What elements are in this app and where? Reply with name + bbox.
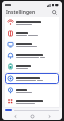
button[interactable]: Terug <box>11 112 19 120</box>
button[interactable] <box>5 39 59 50</box>
staticText: Instellingen <box>6 9 36 16</box>
button[interactable] <box>5 85 59 96</box>
button[interactable] <box>5 17 59 28</box>
button[interactable]: Recent <box>45 112 53 120</box>
button[interactable] <box>5 96 59 107</box>
button[interactable]: Zoeken <box>51 9 58 16</box>
button[interactable]: Home <box>28 112 36 120</box>
button[interactable] <box>5 73 59 84</box>
button[interactable] <box>5 61 59 72</box>
button[interactable] <box>5 50 59 61</box>
button[interactable] <box>5 28 59 39</box>
